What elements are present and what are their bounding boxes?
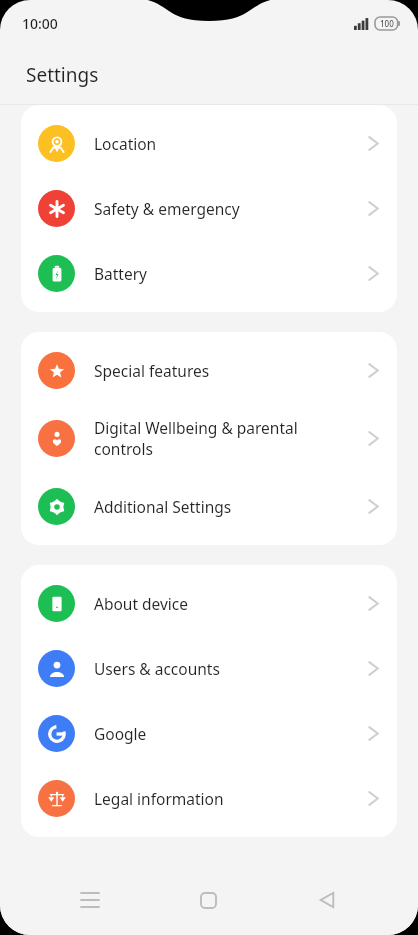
- staticText: Safety & emergency: [94, 198, 360, 219]
- button[interactable]: Google: [21, 701, 397, 766]
- button[interactable]: Legal information: [21, 766, 397, 831]
- button[interactable]: About device: [21, 571, 397, 636]
- staticText: Special features: [94, 360, 360, 381]
- staticText: Legal information: [94, 788, 360, 809]
- staticText: Location: [94, 133, 360, 154]
- staticText: Settings: [26, 62, 99, 88]
- staticText: Battery: [94, 263, 360, 284]
- button[interactable]: Users & accounts: [21, 636, 397, 701]
- staticText: Digital Wellbeing & parental controls: [94, 417, 360, 460]
- button[interactable]: Battery: [21, 241, 397, 306]
- button[interactable]: Location: [21, 111, 397, 176]
- staticText: 10:00: [22, 14, 58, 33]
- button[interactable]: Back: [299, 872, 355, 928]
- button[interactable]: Safety & emergency: [21, 176, 397, 241]
- staticText: Additional Settings: [94, 496, 360, 517]
- button[interactable]: Home: [180, 872, 236, 928]
- staticText: Users & accounts: [94, 658, 360, 679]
- staticText: 100: [380, 18, 394, 29]
- button[interactable]: Special features: [21, 338, 397, 403]
- staticText: Google: [94, 723, 360, 744]
- staticText: About device: [94, 593, 360, 614]
- button[interactable]: Additional Settings: [21, 474, 397, 539]
- button[interactable]: Recent apps: [62, 872, 118, 928]
- button[interactable]: Digital Wellbeing & parental controls: [21, 403, 397, 474]
